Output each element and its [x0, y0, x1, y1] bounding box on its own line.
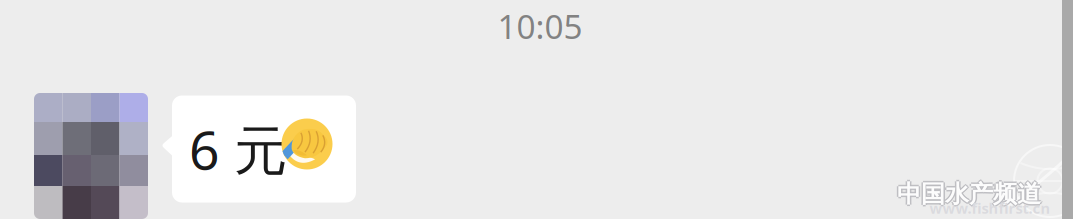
- staticText: www.fishfirst.cn: [929, 198, 1050, 218]
- staticText: 10:05: [497, 4, 582, 48]
- staticText: 中国水产频道: [897, 181, 1041, 210]
- staticText: 6 元: [189, 114, 287, 184]
- staticText: 中国水产频道: [898, 179, 1042, 209]
- staticText: 中国水产频道: [897, 178, 1041, 207]
- staticText: 中国水产频道: [896, 179, 1040, 209]
- staticText: 中国水产频道: [897, 179, 1041, 209]
